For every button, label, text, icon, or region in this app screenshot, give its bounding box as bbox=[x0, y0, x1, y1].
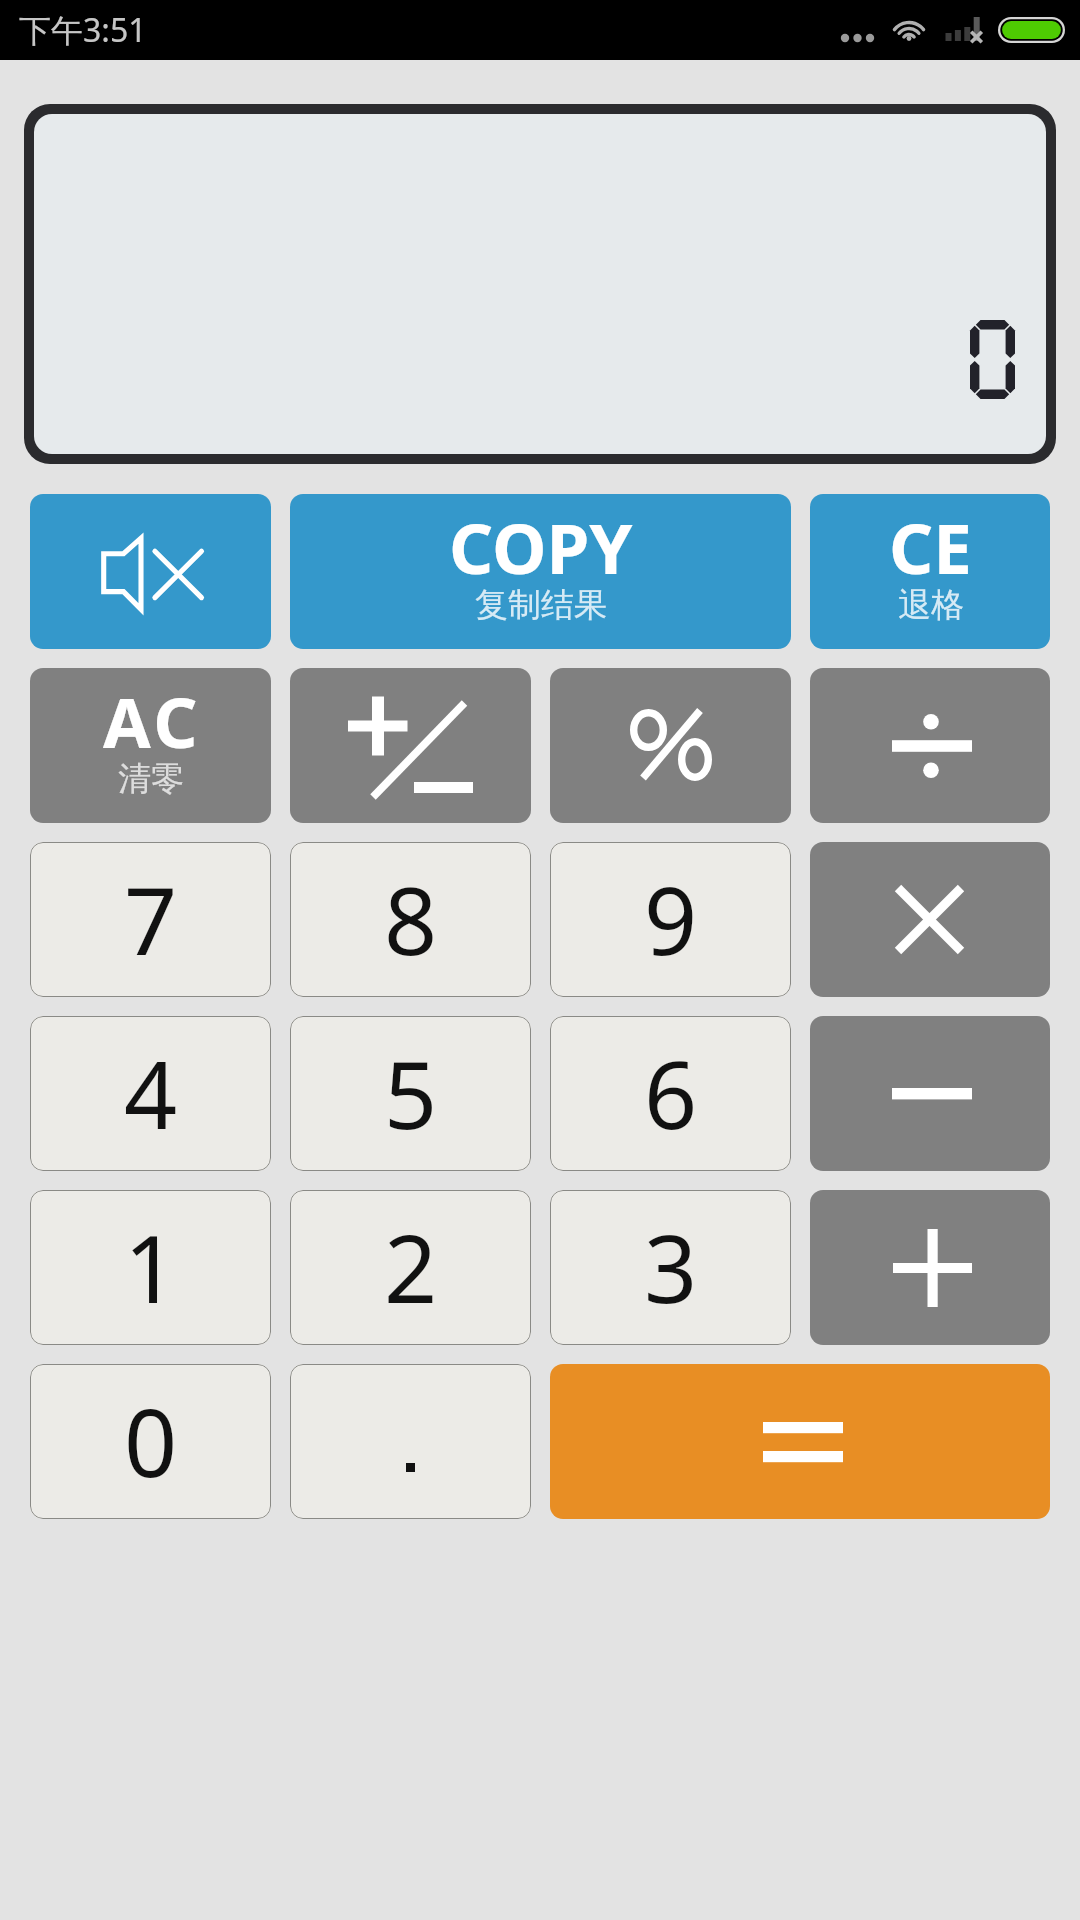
button[interactable]: 0 bbox=[30, 1364, 271, 1519]
staticText: 4 bbox=[124, 1030, 178, 1157]
button[interactable]: 8 bbox=[290, 842, 531, 997]
staticText: 5 bbox=[384, 1030, 438, 1157]
staticText: 8 bbox=[384, 856, 438, 983]
staticText: AC bbox=[103, 674, 202, 768]
button[interactable]: Decimal point bbox=[290, 1364, 531, 1519]
button[interactable]: AC clear bbox=[30, 668, 271, 823]
button[interactable]: Plus minus sign bbox=[290, 668, 531, 823]
staticText: 退格 bbox=[898, 584, 964, 626]
button[interactable]: 5 bbox=[290, 1016, 531, 1171]
button[interactable]: Copy result bbox=[290, 494, 791, 649]
button[interactable]: 4 bbox=[30, 1016, 271, 1171]
button[interactable]: Minus bbox=[810, 1016, 1050, 1171]
button[interactable]: Multiply bbox=[810, 842, 1050, 997]
button[interactable]: 6 bbox=[550, 1016, 791, 1171]
staticText: 清零 bbox=[118, 758, 184, 800]
button[interactable]: Percent bbox=[550, 668, 791, 823]
button[interactable]: 2 bbox=[290, 1190, 531, 1345]
button[interactable]: 9 bbox=[550, 842, 791, 997]
button[interactable]: CE clear entry bbox=[810, 494, 1050, 649]
staticText: 9 bbox=[644, 856, 698, 983]
button[interactable]: Equals bbox=[550, 1364, 1050, 1519]
staticText: CE bbox=[889, 500, 972, 594]
button[interactable]: Plus bbox=[810, 1190, 1050, 1345]
staticText: 复制结果 bbox=[475, 584, 607, 626]
staticText: 0 bbox=[124, 1378, 178, 1505]
staticText: COPY bbox=[449, 500, 633, 594]
button[interactable]: Divide bbox=[810, 668, 1050, 823]
staticText: 3 bbox=[644, 1204, 698, 1331]
staticText: 下午3:51 bbox=[19, 8, 147, 52]
button[interactable]: Mute bbox=[30, 494, 271, 649]
button[interactable]: 7 bbox=[30, 842, 271, 997]
staticText: 6 bbox=[644, 1030, 698, 1157]
button[interactable]: 1 bbox=[30, 1190, 271, 1345]
button[interactable]: 3 bbox=[550, 1190, 791, 1345]
staticText: 7 bbox=[124, 856, 178, 983]
staticText: 2 bbox=[384, 1204, 438, 1331]
staticText: 1 bbox=[124, 1204, 178, 1331]
